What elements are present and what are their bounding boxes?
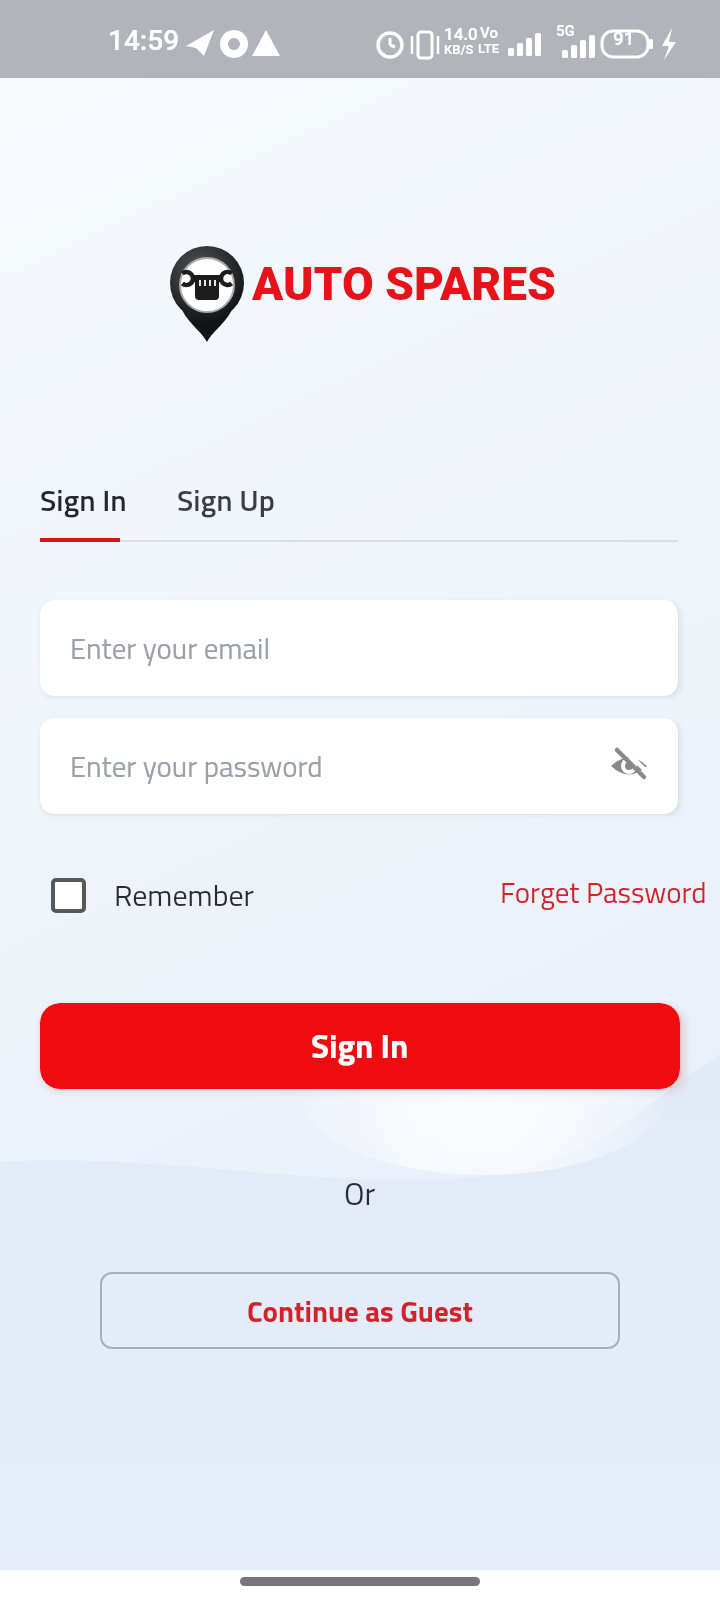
staticText: Or xyxy=(344,1170,376,1217)
staticText: LTE xyxy=(478,41,499,56)
staticText: Enter your email xyxy=(70,626,271,670)
staticText: Sign Up xyxy=(177,477,275,523)
staticText: 5G xyxy=(556,22,575,40)
staticText: 14.0 xyxy=(444,24,478,44)
staticText: AUTO SPARES xyxy=(252,257,556,311)
staticText: Forget Password xyxy=(500,870,707,914)
staticText: Sign In xyxy=(40,477,127,523)
staticText: Sign In xyxy=(311,1021,409,1071)
button[interactable]: Enter your email xyxy=(40,600,678,696)
staticText: KB/S xyxy=(444,42,474,57)
staticText: 14:59 xyxy=(108,24,180,57)
button[interactable]: Enter your password xyxy=(40,718,678,814)
staticText: 91 xyxy=(613,27,635,49)
button[interactable]: Continue as Guest xyxy=(100,1272,620,1349)
button[interactable]: Sign In xyxy=(40,1003,680,1089)
button[interactable]: Forget Password xyxy=(500,870,707,914)
button[interactable]: Remember xyxy=(51,872,254,918)
staticText: Enter your password xyxy=(70,744,323,788)
button[interactable]: Sign In xyxy=(40,477,127,523)
button[interactable]: Sign Up xyxy=(177,477,275,523)
button[interactable] xyxy=(610,746,650,786)
staticText: Continue as Guest xyxy=(247,1289,473,1333)
staticText: Vo xyxy=(480,24,498,42)
staticText: Remember xyxy=(114,872,254,918)
